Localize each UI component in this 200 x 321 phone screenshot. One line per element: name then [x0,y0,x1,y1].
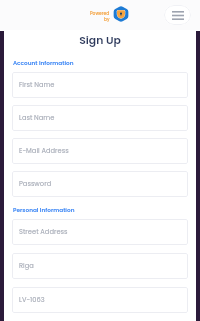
staticText: Last Name [19,113,55,122]
button[interactable]: Open menu [164,5,191,25]
staticText: Personal Information [13,206,75,214]
staticText: First Name [19,80,55,89]
button[interactable]: First Name [12,72,188,98]
button[interactable]: LV-1063 [12,287,188,313]
staticText: E-Mail Address [19,146,69,155]
button[interactable]: Last Name [12,105,188,131]
button[interactable]: Password [12,171,188,197]
staticText: LV-1063 [19,295,45,304]
button[interactable]: Street Address [12,219,188,245]
staticText: Powered [90,10,110,16]
button[interactable]: E-Mail Address [12,138,188,164]
staticText: Account Information [13,59,74,67]
staticText: by [104,16,110,22]
button[interactable]: Riga [12,253,188,279]
staticText: Riga [19,261,34,270]
staticText: Street Address [19,227,68,236]
staticText: Sign Up [79,33,121,47]
staticText: Password [19,179,52,188]
